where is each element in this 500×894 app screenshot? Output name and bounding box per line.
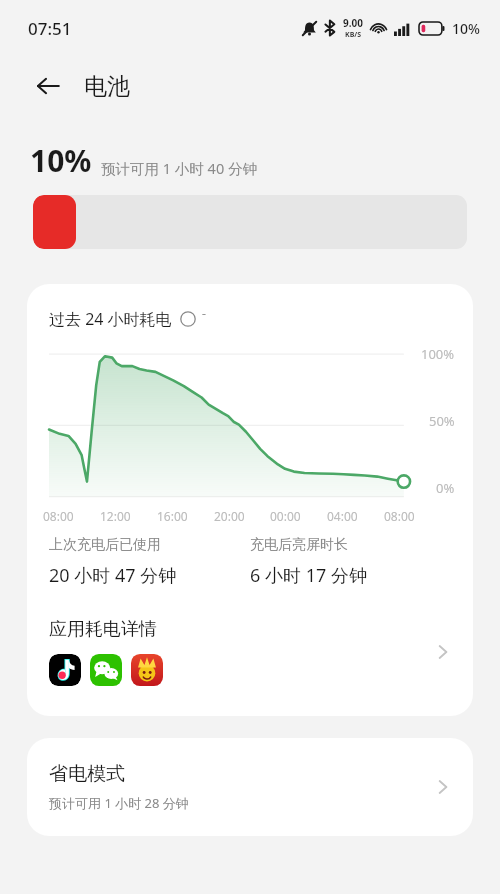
staticText: 应用耗电详情: [49, 618, 157, 641]
staticText: 12:00: [100, 508, 131, 524]
staticText: 00:00: [270, 508, 301, 524]
staticText: 过去 24 小时耗电: [49, 308, 172, 330]
staticText: 10%: [452, 19, 480, 38]
staticText: 100%: [421, 345, 455, 363]
button[interactable]: Back: [26, 64, 70, 108]
staticText: 07:51: [28, 17, 72, 40]
staticText: 20:00: [214, 508, 245, 524]
staticText: ?: [202, 311, 207, 315]
staticText: 50%: [429, 412, 455, 430]
staticText: 预计可用 1 小时 40 分钟: [101, 158, 257, 178]
button[interactable]: 应用耗电详情: [27, 618, 473, 686]
staticText: 6 小时 17 分钟: [250, 563, 367, 588]
button[interactable]: 省电模式: [27, 738, 473, 836]
staticText: 0%: [436, 479, 455, 497]
staticText: 充电后亮屏时长: [250, 536, 348, 554]
staticText: KB/S: [345, 30, 362, 40]
staticText: 08:00: [43, 508, 74, 524]
staticText: 04:00: [327, 508, 358, 524]
staticText: 16:00: [157, 508, 188, 524]
staticText: 08:00: [384, 508, 415, 524]
staticText: 电池: [84, 72, 130, 101]
staticText: 省电模式: [49, 762, 125, 786]
staticText: 预计可用 1 小时 28 分钟: [49, 794, 189, 812]
staticText: 上次充电后已使用: [49, 536, 161, 554]
staticText: 10%: [30, 140, 92, 181]
staticText: 9.00: [343, 16, 363, 30]
staticText: 20 小时 47 分钟: [49, 563, 177, 588]
